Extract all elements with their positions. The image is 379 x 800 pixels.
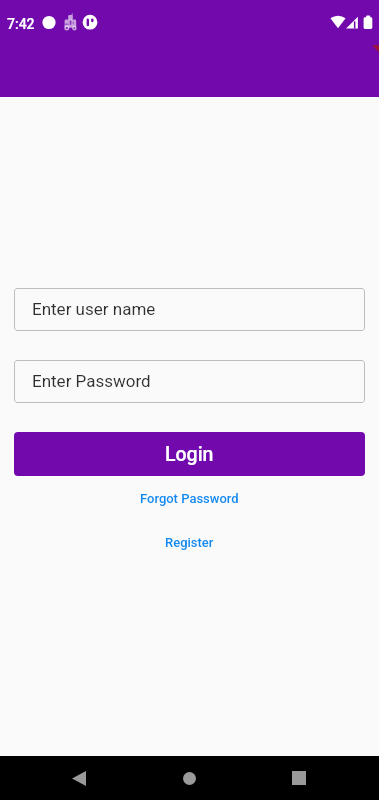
- staticText: Login: [165, 443, 214, 466]
- button[interactable]: Enter Password: [14, 360, 365, 403]
- button[interactable]: Login: [14, 432, 365, 476]
- button[interactable]: Register: [155, 531, 224, 554]
- staticText: Register: [165, 535, 214, 550]
- button[interactable]: Back: [34, 756, 124, 800]
- staticText: 7:42: [7, 16, 35, 32]
- staticText: Forgot Password: [140, 491, 239, 506]
- button[interactable]: Forgot Password: [130, 487, 249, 510]
- button[interactable]: Recent apps: [254, 756, 344, 800]
- staticText: Enter Password: [32, 371, 151, 391]
- button[interactable]: Enter user name: [14, 288, 365, 331]
- button[interactable]: Home: [144, 756, 234, 800]
- staticText: Enter user name: [32, 299, 156, 319]
